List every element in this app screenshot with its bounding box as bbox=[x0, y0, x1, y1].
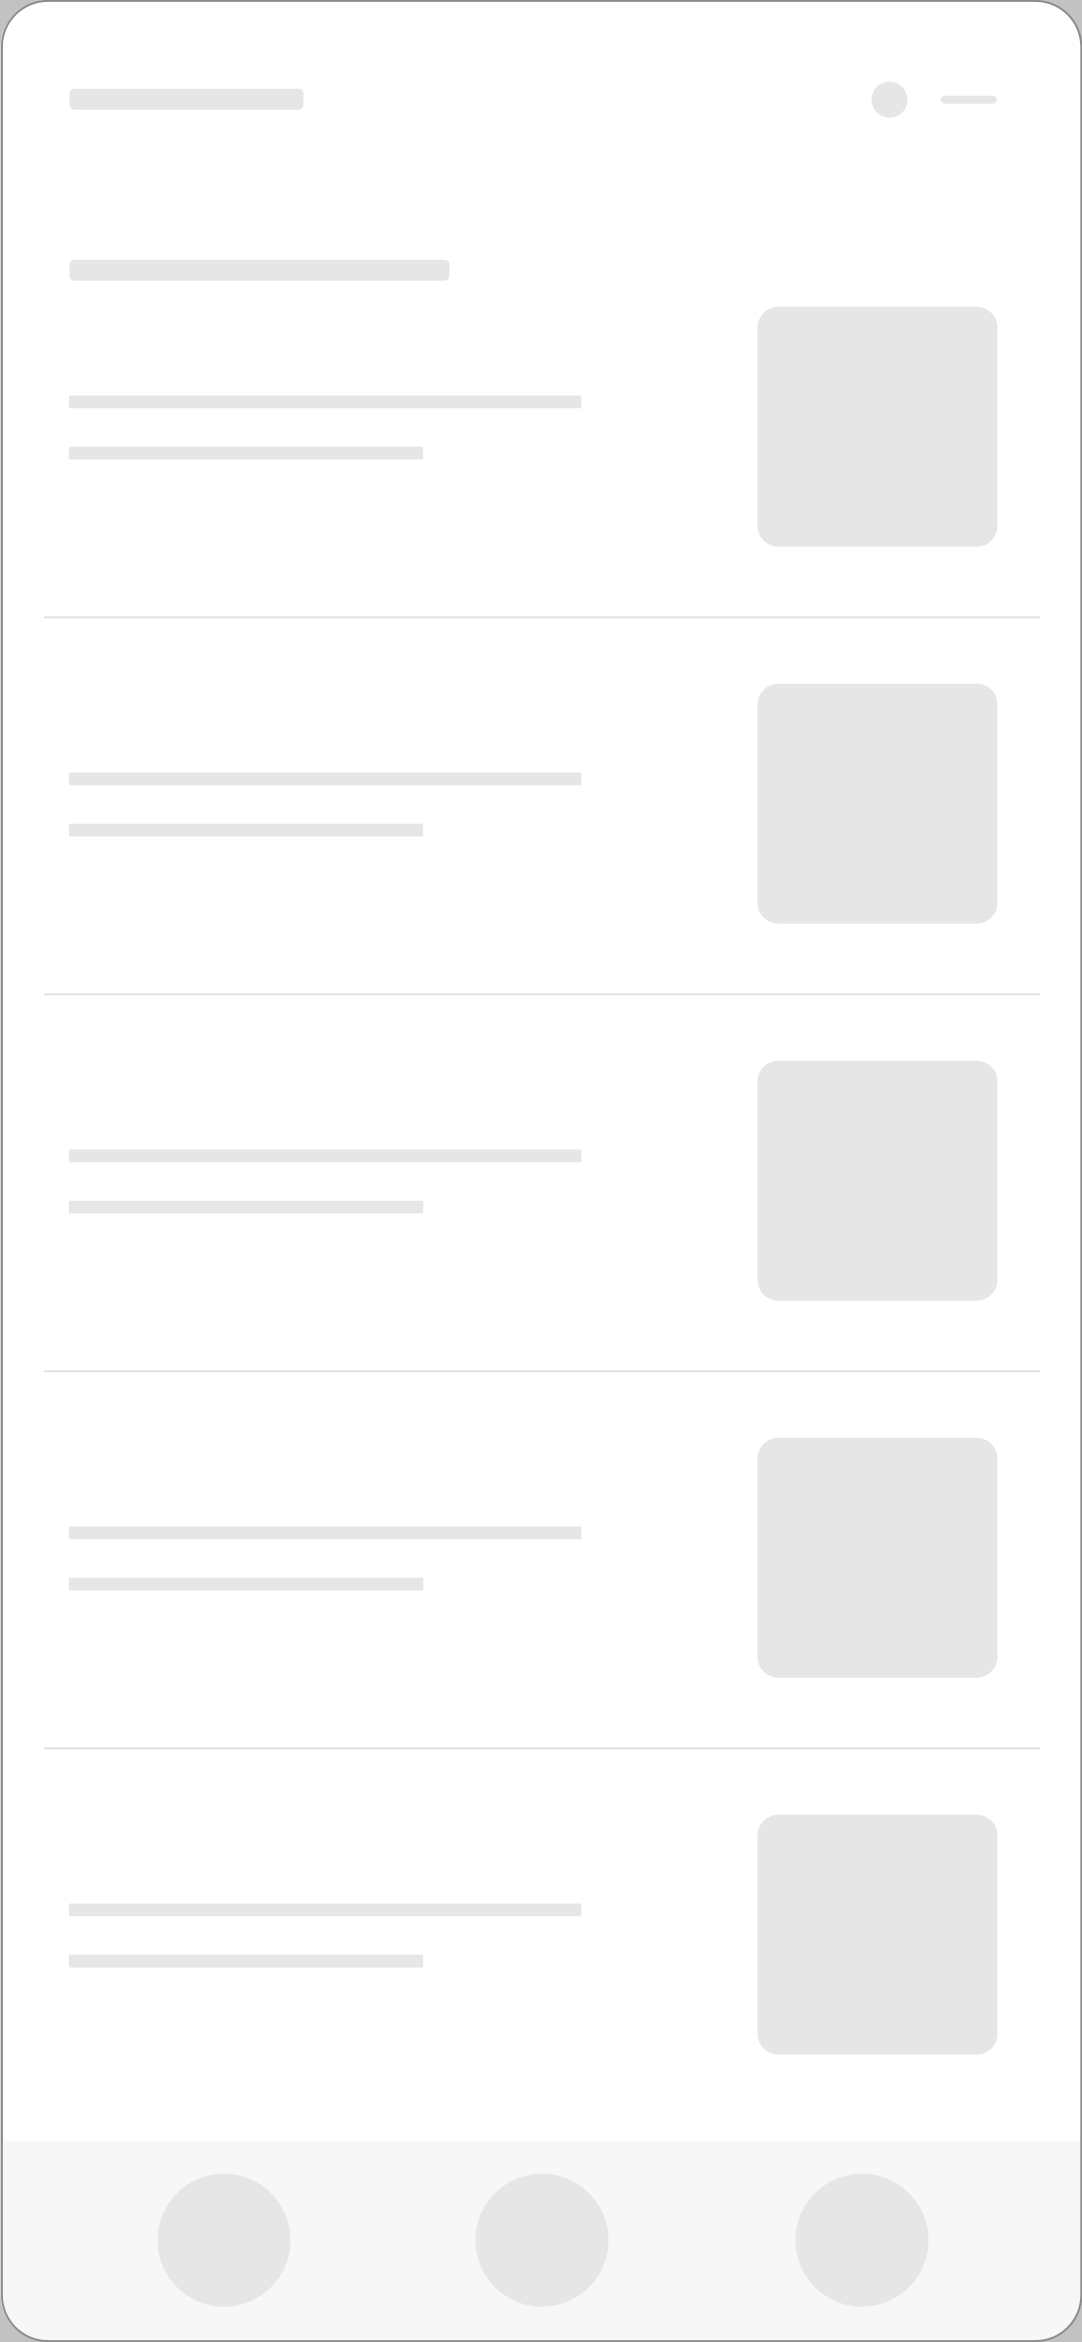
button[interactable] bbox=[0, 993, 1082, 1370]
button[interactable] bbox=[0, 1370, 1082, 1747]
button[interactable] bbox=[0, 616, 1082, 993]
button[interactable]: Profile bbox=[871, 82, 907, 118]
button[interactable]: Third tab bbox=[795, 2174, 928, 2307]
button[interactable]: First tab bbox=[157, 2174, 290, 2307]
button[interactable] bbox=[0, 239, 1082, 616]
button[interactable] bbox=[0, 1747, 1082, 2124]
button[interactable]: Menu bbox=[941, 82, 997, 118]
button[interactable]: Second tab bbox=[475, 2174, 608, 2307]
